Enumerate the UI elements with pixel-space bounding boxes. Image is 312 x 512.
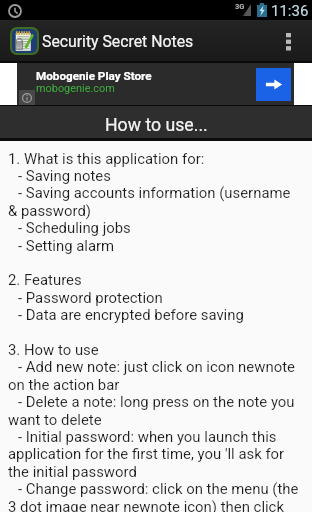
- staticText: want to delete: [8, 411, 102, 428]
- button[interactable]: Ad info: [19, 90, 35, 105]
- staticText: How to use...: [105, 115, 208, 136]
- staticText: - Data are encrypted before saving: [18, 306, 244, 323]
- staticText: mobogenie.com: [36, 82, 115, 95]
- staticText: & password): [8, 202, 91, 219]
- staticText: - Saving accounts information (username: [18, 184, 291, 201]
- staticText: - Setting alarm: [18, 237, 115, 254]
- staticText: on the action bar: [8, 376, 120, 393]
- button[interactable]: App icon: [12, 29, 37, 53]
- staticText: 1. What is this application for:: [8, 150, 205, 167]
- staticText: - Scheduling jobs: [18, 219, 131, 236]
- staticText: 11:36: [271, 2, 309, 20]
- staticText: Security Secret Notes: [42, 32, 194, 51]
- staticText: 3 dot image near newnote icon) then clic…: [8, 498, 284, 512]
- staticText: - Add new note: just click on icon newno…: [18, 358, 295, 375]
- staticText: application for the first time, you 'll …: [8, 445, 285, 462]
- staticText: - Saving notes: [18, 167, 111, 184]
- button[interactable]: [0, 63, 312, 105]
- staticText: - Password protection: [18, 289, 163, 306]
- button[interactable]: More options: [278, 20, 312, 61]
- staticText: 3. How to use: [8, 341, 99, 358]
- staticText: - Initial password: when you launch this: [18, 428, 277, 445]
- button[interactable]: Install: [256, 68, 291, 101]
- staticText: 2. Features: [8, 271, 82, 288]
- staticText: - Delete a note: long press on the note …: [18, 393, 295, 410]
- staticText: Mobogenie Play Store: [36, 69, 152, 83]
- staticText: 3G: [235, 2, 245, 11]
- staticText: the initial password: [8, 463, 137, 480]
- staticText: - Change password: click on the menu (th…: [18, 480, 299, 497]
